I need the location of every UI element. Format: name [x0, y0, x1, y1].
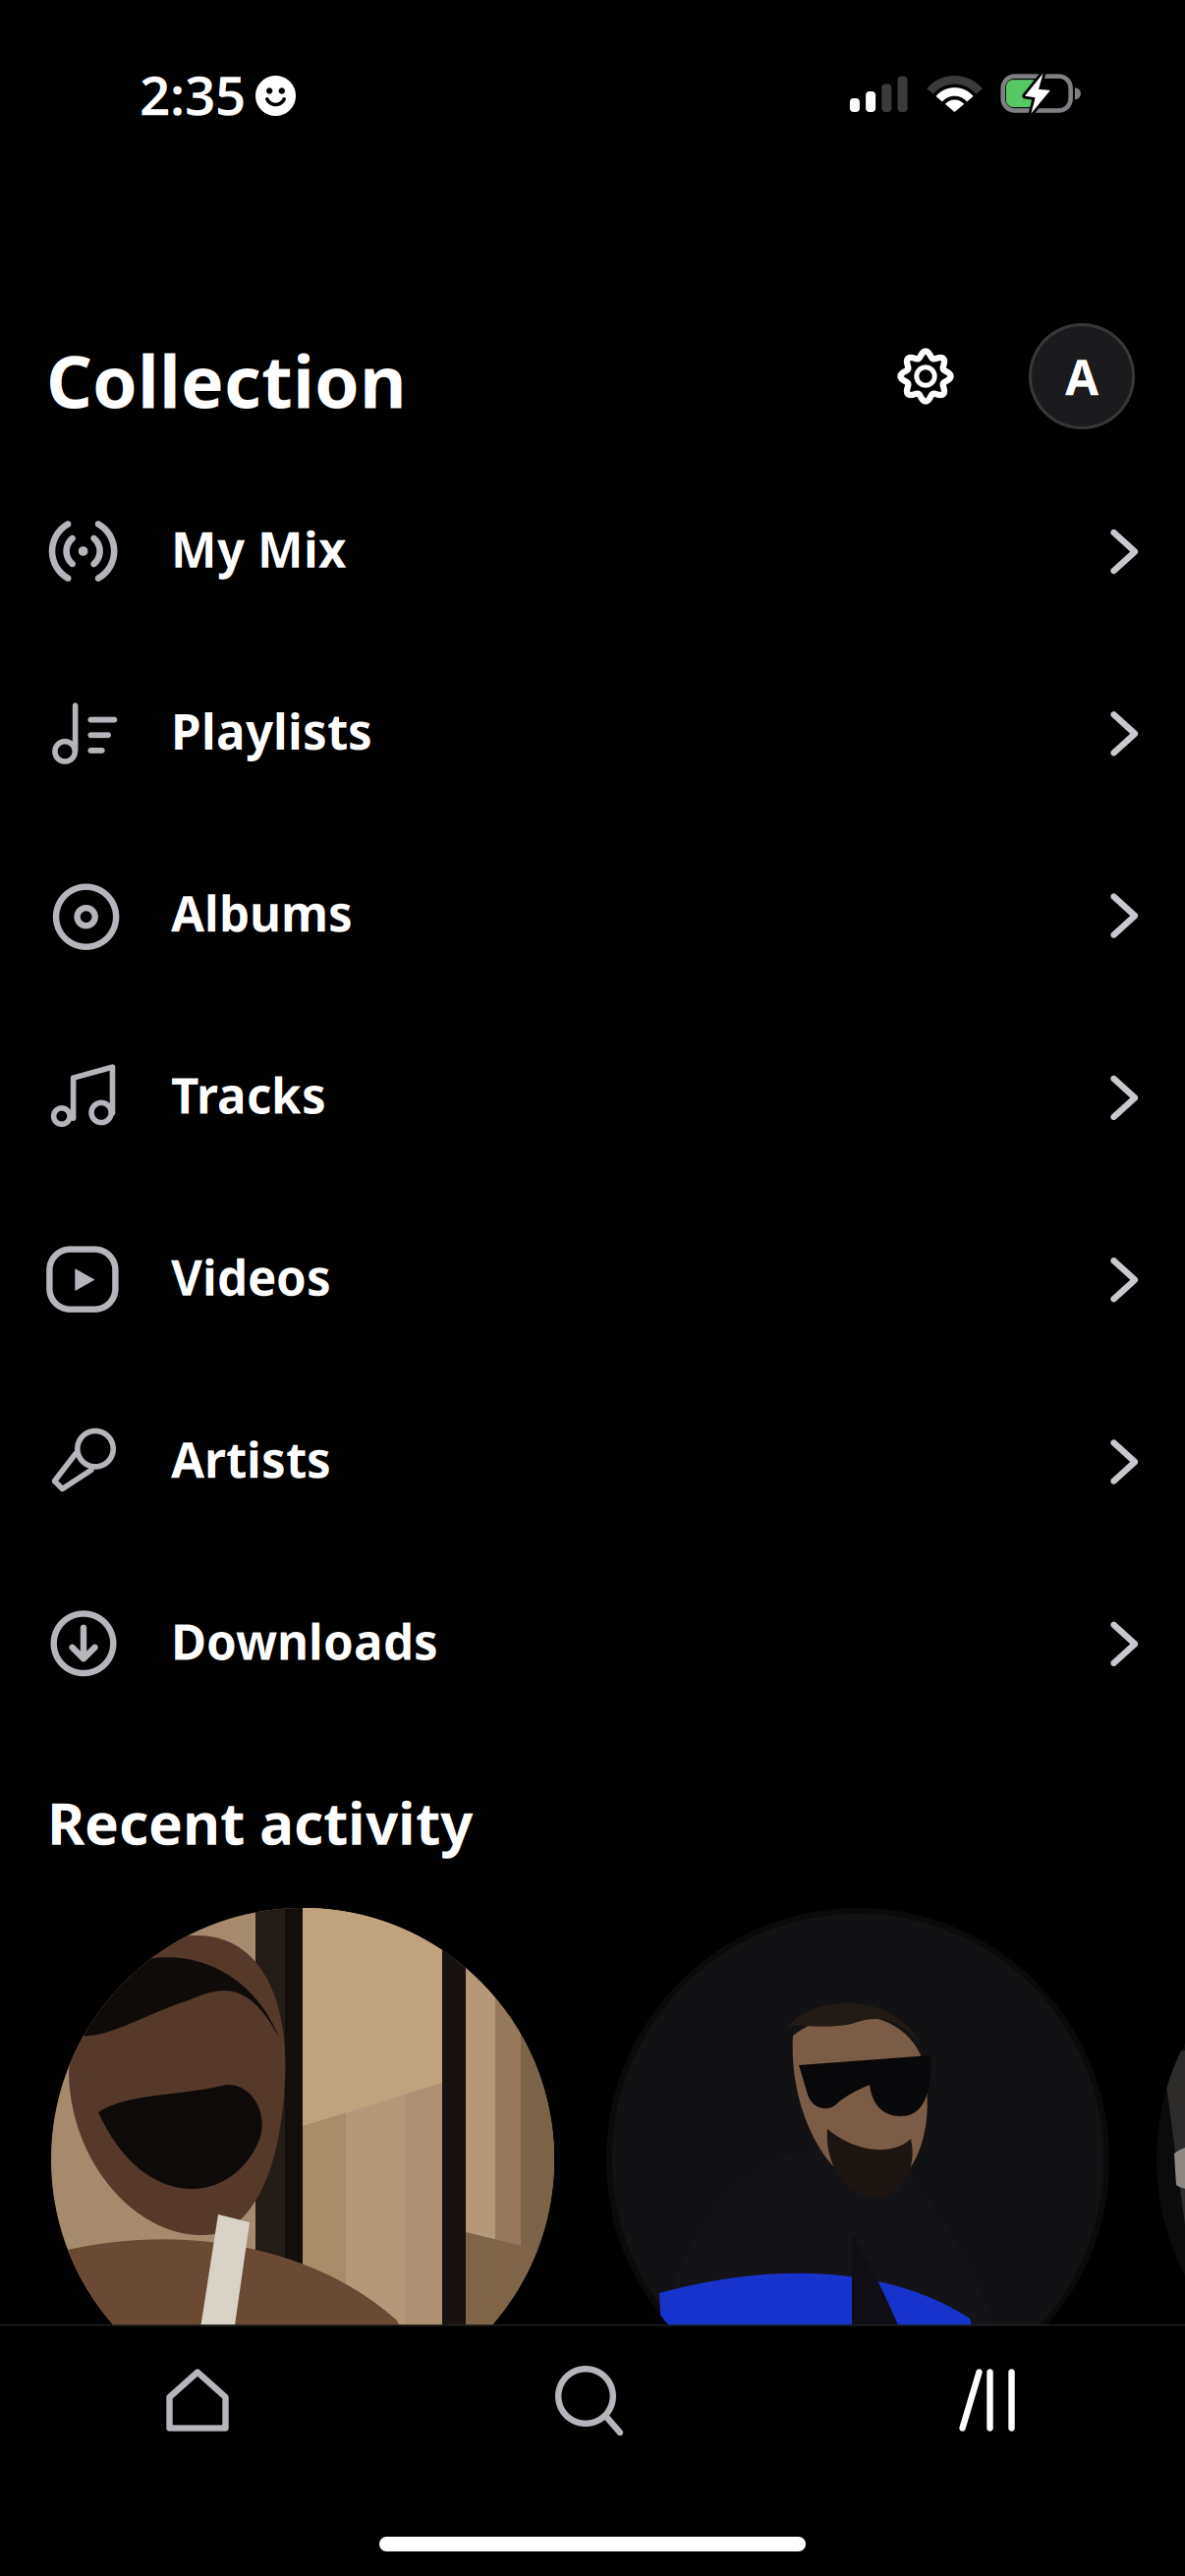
button[interactable]: Lloyd Banks — [606, 1908, 1109, 2411]
button[interactable]: Artists — [0, 1370, 1185, 1552]
button[interactable]: Playlists — [0, 642, 1185, 824]
staticText: Playlists — [171, 699, 372, 763]
button[interactable]: Home — [0, 2326, 395, 2462]
button[interactable]: Search — [395, 2326, 790, 2462]
staticText: Tracks — [171, 1063, 326, 1127]
staticText: Collection — [46, 332, 407, 428]
button[interactable]: Profile — [1029, 323, 1135, 429]
button[interactable]: My Collection — [790, 2326, 1185, 2462]
button[interactable]: The Game — [51, 1908, 554, 2411]
staticText: Videos — [171, 1245, 331, 1309]
staticText: My Mix — [171, 516, 347, 581]
staticText: 2:35 — [140, 59, 246, 130]
staticText: Artists — [171, 1427, 331, 1491]
button[interactable]: Settings — [862, 313, 989, 439]
staticText: Albums — [171, 881, 353, 945]
button[interactable]: Albums — [0, 824, 1185, 1006]
button[interactable]: My Mix — [0, 460, 1185, 642]
button[interactable]: Downloads — [0, 1552, 1185, 1735]
button[interactable]: Tracks — [0, 1006, 1185, 1188]
staticText: Recent activity — [47, 1784, 473, 1861]
staticText: A — [1065, 344, 1099, 408]
button[interactable]: Videos — [0, 1188, 1185, 1370]
staticText: Downloads — [171, 1609, 438, 1673]
